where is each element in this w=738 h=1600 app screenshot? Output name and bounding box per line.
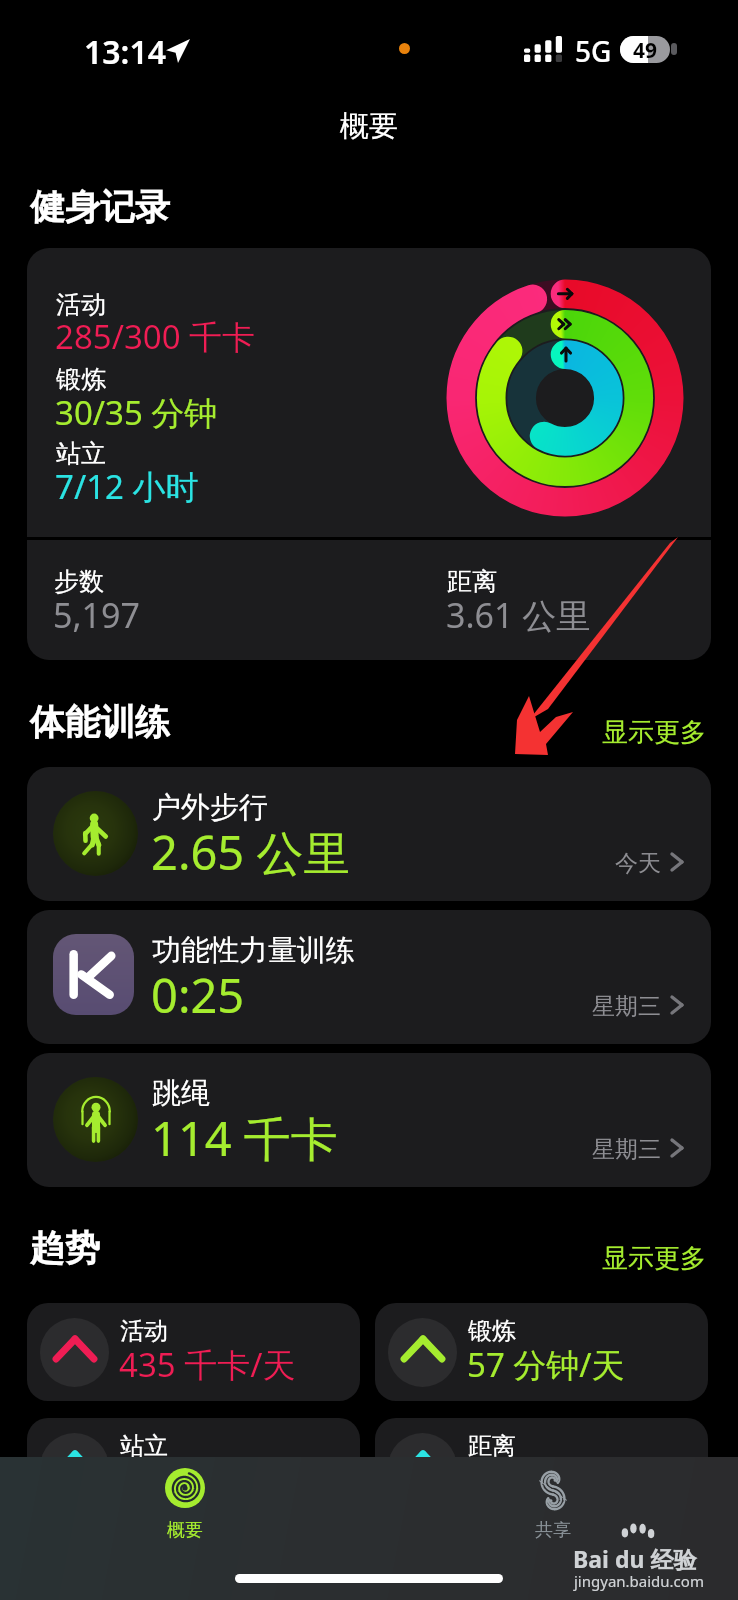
staticText: 57 分钟/天 — [467, 1342, 625, 1387]
staticText: 114 千卡 — [151, 1106, 338, 1170]
staticText: 锻炼 — [56, 364, 106, 395]
button[interactable]: 站立 — [27, 1418, 360, 1516]
staticText: 4.3 公里/天 — [467, 1457, 634, 1502]
button[interactable]: 距离 — [375, 1418, 708, 1516]
staticText: jingyan.baidu.com — [574, 1571, 704, 1591]
staticText: 30/35 分钟 — [55, 390, 218, 435]
staticText: 体能训练 — [30, 700, 170, 744]
staticText: 5,197 — [53, 592, 140, 638]
staticText: 5G — [575, 32, 612, 70]
button[interactable]: 跳绳 — [27, 1053, 711, 1187]
staticText: 285/300 千卡 — [55, 314, 256, 359]
staticText: 步数 — [54, 566, 104, 597]
staticText: 0:25 — [151, 963, 245, 1027]
staticText: 今天 — [615, 849, 661, 878]
button[interactable]: 显示更多 — [596, 710, 712, 755]
button[interactable]: 功能性力量训练 — [27, 910, 711, 1044]
button[interactable]: 概要 — [125, 1457, 245, 1557]
staticText: 显示更多 — [602, 716, 706, 749]
button[interactable]: 活动 — [27, 1303, 360, 1401]
button[interactable]: 户外步行 — [27, 767, 711, 901]
button[interactable]: 共享 — [493, 1457, 613, 1557]
staticText: 活动 — [56, 289, 106, 320]
staticText: 距离 — [468, 1431, 516, 1461]
staticText: 星期三 — [592, 1135, 661, 1164]
staticText: 49 — [633, 36, 658, 63]
staticText: 星期三 — [592, 992, 661, 1021]
staticText: 435 千卡/天 — [119, 1342, 296, 1387]
staticText: 站立 — [56, 438, 106, 469]
staticText: 跳绳 — [152, 1075, 210, 1112]
staticText: 概要 — [125, 1519, 245, 1542]
staticText: 功能性力量训练 — [152, 932, 355, 969]
staticText: 共享 — [493, 1519, 613, 1542]
staticText: 2.65 公里 — [151, 820, 351, 884]
staticText: 显示更多 — [602, 1242, 706, 1275]
staticText: 活动 — [120, 1316, 168, 1346]
button[interactable]: 显示更多 — [596, 1236, 712, 1281]
staticText: 户外步行 — [152, 789, 268, 826]
staticText: Bai du 经验 — [573, 1543, 697, 1574]
staticText: 站立 — [120, 1431, 168, 1461]
button[interactable]: 锻炼 — [375, 1303, 708, 1401]
staticText: 10 小时/天 — [119, 1457, 277, 1502]
staticText: 锻炼 — [468, 1316, 516, 1346]
staticText: 概要 — [340, 108, 398, 145]
staticText: 3.61 公里 — [446, 592, 591, 638]
button[interactable]: 活动 — [27, 248, 711, 660]
staticText: 13:14 — [84, 30, 167, 74]
staticText: 趋势 — [30, 1226, 100, 1270]
staticText: 距离 — [447, 566, 497, 597]
staticText: 健身记录 — [30, 185, 170, 229]
staticText: 7/12 小时 — [55, 464, 199, 509]
